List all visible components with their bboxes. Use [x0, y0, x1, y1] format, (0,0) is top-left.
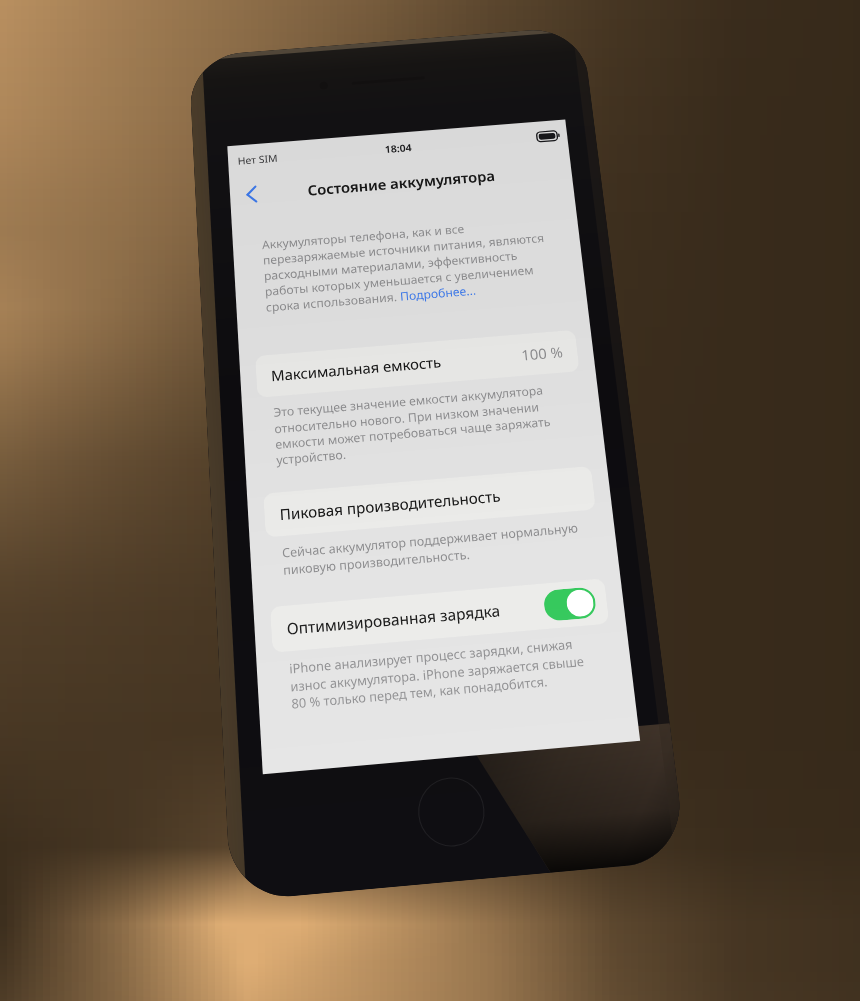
button[interactable]: Пиковая производительность — [263, 466, 596, 537]
button[interactable]: Back — [229, 173, 273, 215]
button[interactable]: Оптимизированная зарядка — [270, 578, 609, 653]
staticText: 100 % — [520, 342, 565, 364]
staticText: Состояние аккумулятора — [307, 166, 496, 199]
staticText: iPhone анализирует процесс зарядки, сниж… — [289, 634, 587, 712]
button[interactable]: Optimized battery charging toggle — [542, 586, 597, 622]
staticText: Максимальная емкость — [270, 352, 443, 385]
staticText: 18:04 — [384, 140, 413, 156]
staticText: Аккумуляторы телефона, как и все перезар… — [261, 215, 551, 315]
staticText: Нет SIM — [237, 151, 278, 167]
button[interactable]: Максимальная емкость — [255, 330, 580, 398]
staticText: Это текущее значение емкости аккумулятор… — [273, 382, 553, 468]
staticText: Сейчас аккумулятор поддерживает нормальн… — [282, 519, 582, 578]
staticText: Оптимизированная зарядка — [286, 600, 501, 639]
staticText: Пиковая производительность — [279, 485, 502, 524]
